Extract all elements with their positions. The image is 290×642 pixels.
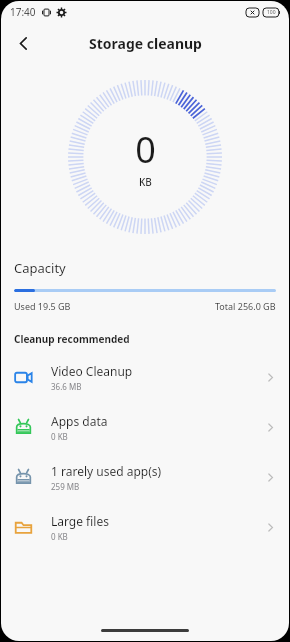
staticText: Cleanup recommended bbox=[14, 332, 130, 346]
staticText: Total 256.0 GB bbox=[215, 300, 276, 312]
staticText: Used 19.5 GB bbox=[14, 300, 71, 312]
staticText: Video Cleanup bbox=[51, 363, 133, 379]
staticText: 100 bbox=[267, 9, 276, 16]
staticText: Capacity bbox=[14, 259, 66, 277]
staticText: Apps data bbox=[51, 413, 108, 429]
staticText: 36.6 MB bbox=[51, 381, 82, 392]
staticText: Large files bbox=[51, 513, 109, 529]
button[interactable]: Back bbox=[7, 27, 39, 59]
staticText: 0 bbox=[135, 125, 156, 174]
button[interactable]: 1 rarely used app(s) bbox=[1, 452, 289, 502]
staticText: Storage cleanup bbox=[89, 34, 202, 53]
button[interactable]: Apps data bbox=[1, 402, 289, 452]
staticText: 0 KB bbox=[51, 531, 68, 542]
button[interactable]: Video Cleanup bbox=[1, 352, 289, 402]
staticText: KB bbox=[139, 175, 152, 189]
staticText: 0 KB bbox=[51, 431, 68, 442]
staticText: 259 MB bbox=[51, 481, 80, 492]
button[interactable]: Large files bbox=[1, 502, 289, 552]
staticText: 1 rarely used app(s) bbox=[51, 463, 162, 479]
staticText: 17:40 bbox=[10, 5, 36, 19]
